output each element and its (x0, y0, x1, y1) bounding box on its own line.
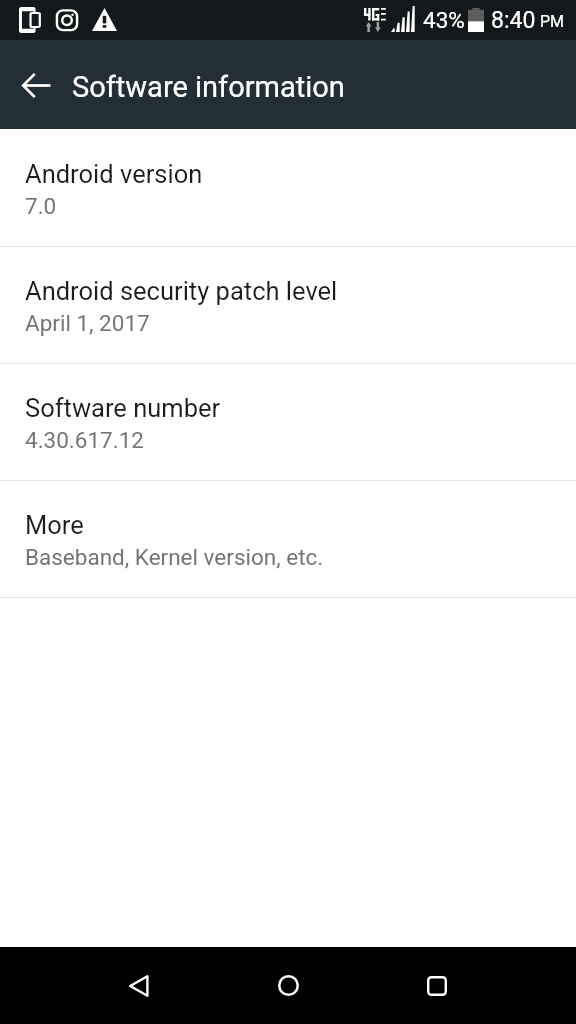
staticText: 8:40 (491, 7, 536, 34)
button[interactable]: Software number (0, 364, 576, 481)
button[interactable]: Android security patch level (0, 247, 576, 364)
staticText: Software information (72, 70, 345, 104)
staticText: 4.30.617.12 (25, 427, 144, 453)
staticText: 43% (423, 7, 465, 33)
staticText: April 1, 2017 (25, 310, 150, 336)
staticText: Baseband, Kernel version, etc. (25, 544, 324, 570)
staticText: 7.0 (25, 193, 57, 219)
staticText: Software number (25, 393, 221, 423)
button[interactable]: Home (264, 947, 312, 1024)
button[interactable]: More (0, 481, 576, 598)
button[interactable]: Back (115, 947, 163, 1024)
button[interactable]: Recent apps (413, 947, 461, 1024)
staticText: Android security patch level (25, 276, 338, 306)
button[interactable]: Android version (0, 130, 576, 247)
staticText: PM (540, 12, 565, 31)
button[interactable]: Back (8, 57, 64, 113)
staticText: More (25, 510, 84, 540)
staticText: Android version (25, 159, 203, 189)
